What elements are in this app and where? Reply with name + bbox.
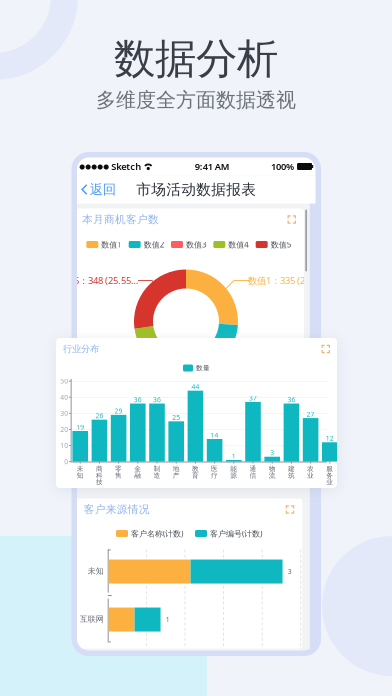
staticText: 医 [211, 465, 218, 473]
staticText: 流 [269, 471, 276, 480]
staticText: 数值1：335 (24.6 [248, 274, 318, 287]
staticText: 金 [134, 465, 141, 473]
staticText: 多维度全方面数据透视 [96, 88, 296, 112]
staticText: 30 [60, 409, 68, 418]
button[interactable]: Expand chart [287, 215, 296, 224]
staticText: 行业分布 [63, 343, 99, 355]
button[interactable]: Expand chart [286, 505, 294, 514]
staticText: 互联网 [80, 614, 104, 624]
staticText: 技 [96, 478, 103, 486]
staticText: Sketch [109, 160, 141, 173]
staticText: 客户编号(计数) [210, 528, 262, 539]
staticText: 返回 [90, 181, 116, 198]
staticText: 20 [60, 425, 68, 434]
staticText: 本月商机客户数 [82, 213, 159, 226]
staticText: 37 [249, 393, 257, 402]
staticText: 物 [269, 465, 276, 473]
staticText: 25 [172, 413, 180, 422]
staticText: 29 [115, 406, 123, 415]
staticText: 业 [307, 471, 314, 480]
staticText: 未知 [88, 566, 104, 576]
staticText: 业 [326, 478, 333, 486]
staticText: 售 [115, 471, 122, 480]
staticText: 通 [249, 465, 256, 473]
staticText: 1 [232, 452, 236, 460]
staticText: 客户来源情况 [84, 503, 150, 516]
staticText: 27 [307, 410, 315, 418]
staticText: 50 [60, 377, 68, 385]
staticText: 教 [192, 465, 199, 473]
staticText: 产 [173, 471, 180, 480]
staticText: 3 [270, 448, 274, 457]
staticText: 务 [326, 471, 333, 480]
staticText: 知 [77, 471, 84, 480]
staticText: 地 [173, 465, 180, 473]
staticText: 商 [96, 465, 103, 473]
staticText: 40 [60, 393, 68, 402]
staticText: 筑 [288, 471, 295, 480]
staticText: 源 [230, 471, 237, 480]
staticText: 市场活动数据报表 [136, 180, 256, 198]
staticText: 36 [153, 395, 161, 404]
staticText: 5：348 (25.55%) [74, 274, 138, 287]
staticText: 36 [134, 395, 142, 404]
staticText: 科 [96, 471, 103, 480]
staticText: 信 [249, 471, 256, 480]
staticText: 造 [153, 471, 160, 480]
staticText: 10 [60, 441, 68, 450]
staticText: 服 [326, 465, 333, 473]
staticText: 数值1 [101, 239, 122, 250]
button[interactable]: Expand chart [321, 345, 330, 353]
staticText: 1 [166, 615, 170, 624]
staticText: 农 [307, 465, 314, 473]
staticText: 19 [76, 422, 84, 431]
staticText: 0 [64, 457, 68, 466]
staticText: 26 [95, 411, 103, 420]
staticText: 数值4 [228, 239, 249, 250]
staticText: 疗 [211, 471, 218, 480]
staticText: 数值3 [186, 239, 207, 250]
staticText: 数据分析 [114, 34, 278, 84]
staticText: 数量 [196, 364, 210, 372]
staticText: 12 [326, 434, 334, 443]
staticText: ●●●●● [79, 163, 109, 170]
staticText: 14 [211, 431, 219, 439]
staticText: 制 [153, 465, 160, 473]
staticText: 未 [77, 465, 84, 473]
staticText: 能 [230, 465, 237, 473]
staticText: 44 [191, 382, 199, 391]
staticText: 3 [288, 567, 292, 576]
staticText: 零 [115, 465, 122, 473]
staticText: 客户名称(计数) [131, 528, 183, 539]
button[interactable]: 返回 [81, 175, 125, 203]
staticText: 9:41 AM [195, 160, 230, 173]
staticText: 36 [287, 395, 295, 404]
staticText: 数值5 [271, 239, 292, 250]
staticText: 100% [271, 160, 294, 173]
staticText: 融 [134, 471, 141, 480]
staticText: 数值2 [144, 239, 165, 250]
staticText: 建 [288, 465, 295, 473]
staticText: 育 [192, 471, 199, 480]
